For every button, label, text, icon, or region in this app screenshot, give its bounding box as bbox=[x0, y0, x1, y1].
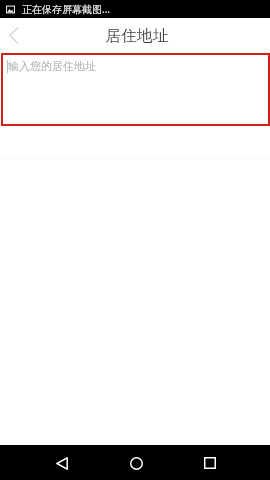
button[interactable]: Recents bbox=[194, 447, 226, 479]
button[interactable]: 输入您的居住地址 bbox=[1, 53, 270, 126]
button[interactable]: Home bbox=[120, 447, 152, 479]
button[interactable]: Back bbox=[0, 18, 27, 53]
staticText: 输入您的居住地址 bbox=[8, 59, 96, 73]
staticText: 居住地址 bbox=[105, 26, 169, 46]
button[interactable]: Back bbox=[46, 447, 78, 479]
staticText: 正在保存屏幕截图... bbox=[22, 2, 111, 16]
